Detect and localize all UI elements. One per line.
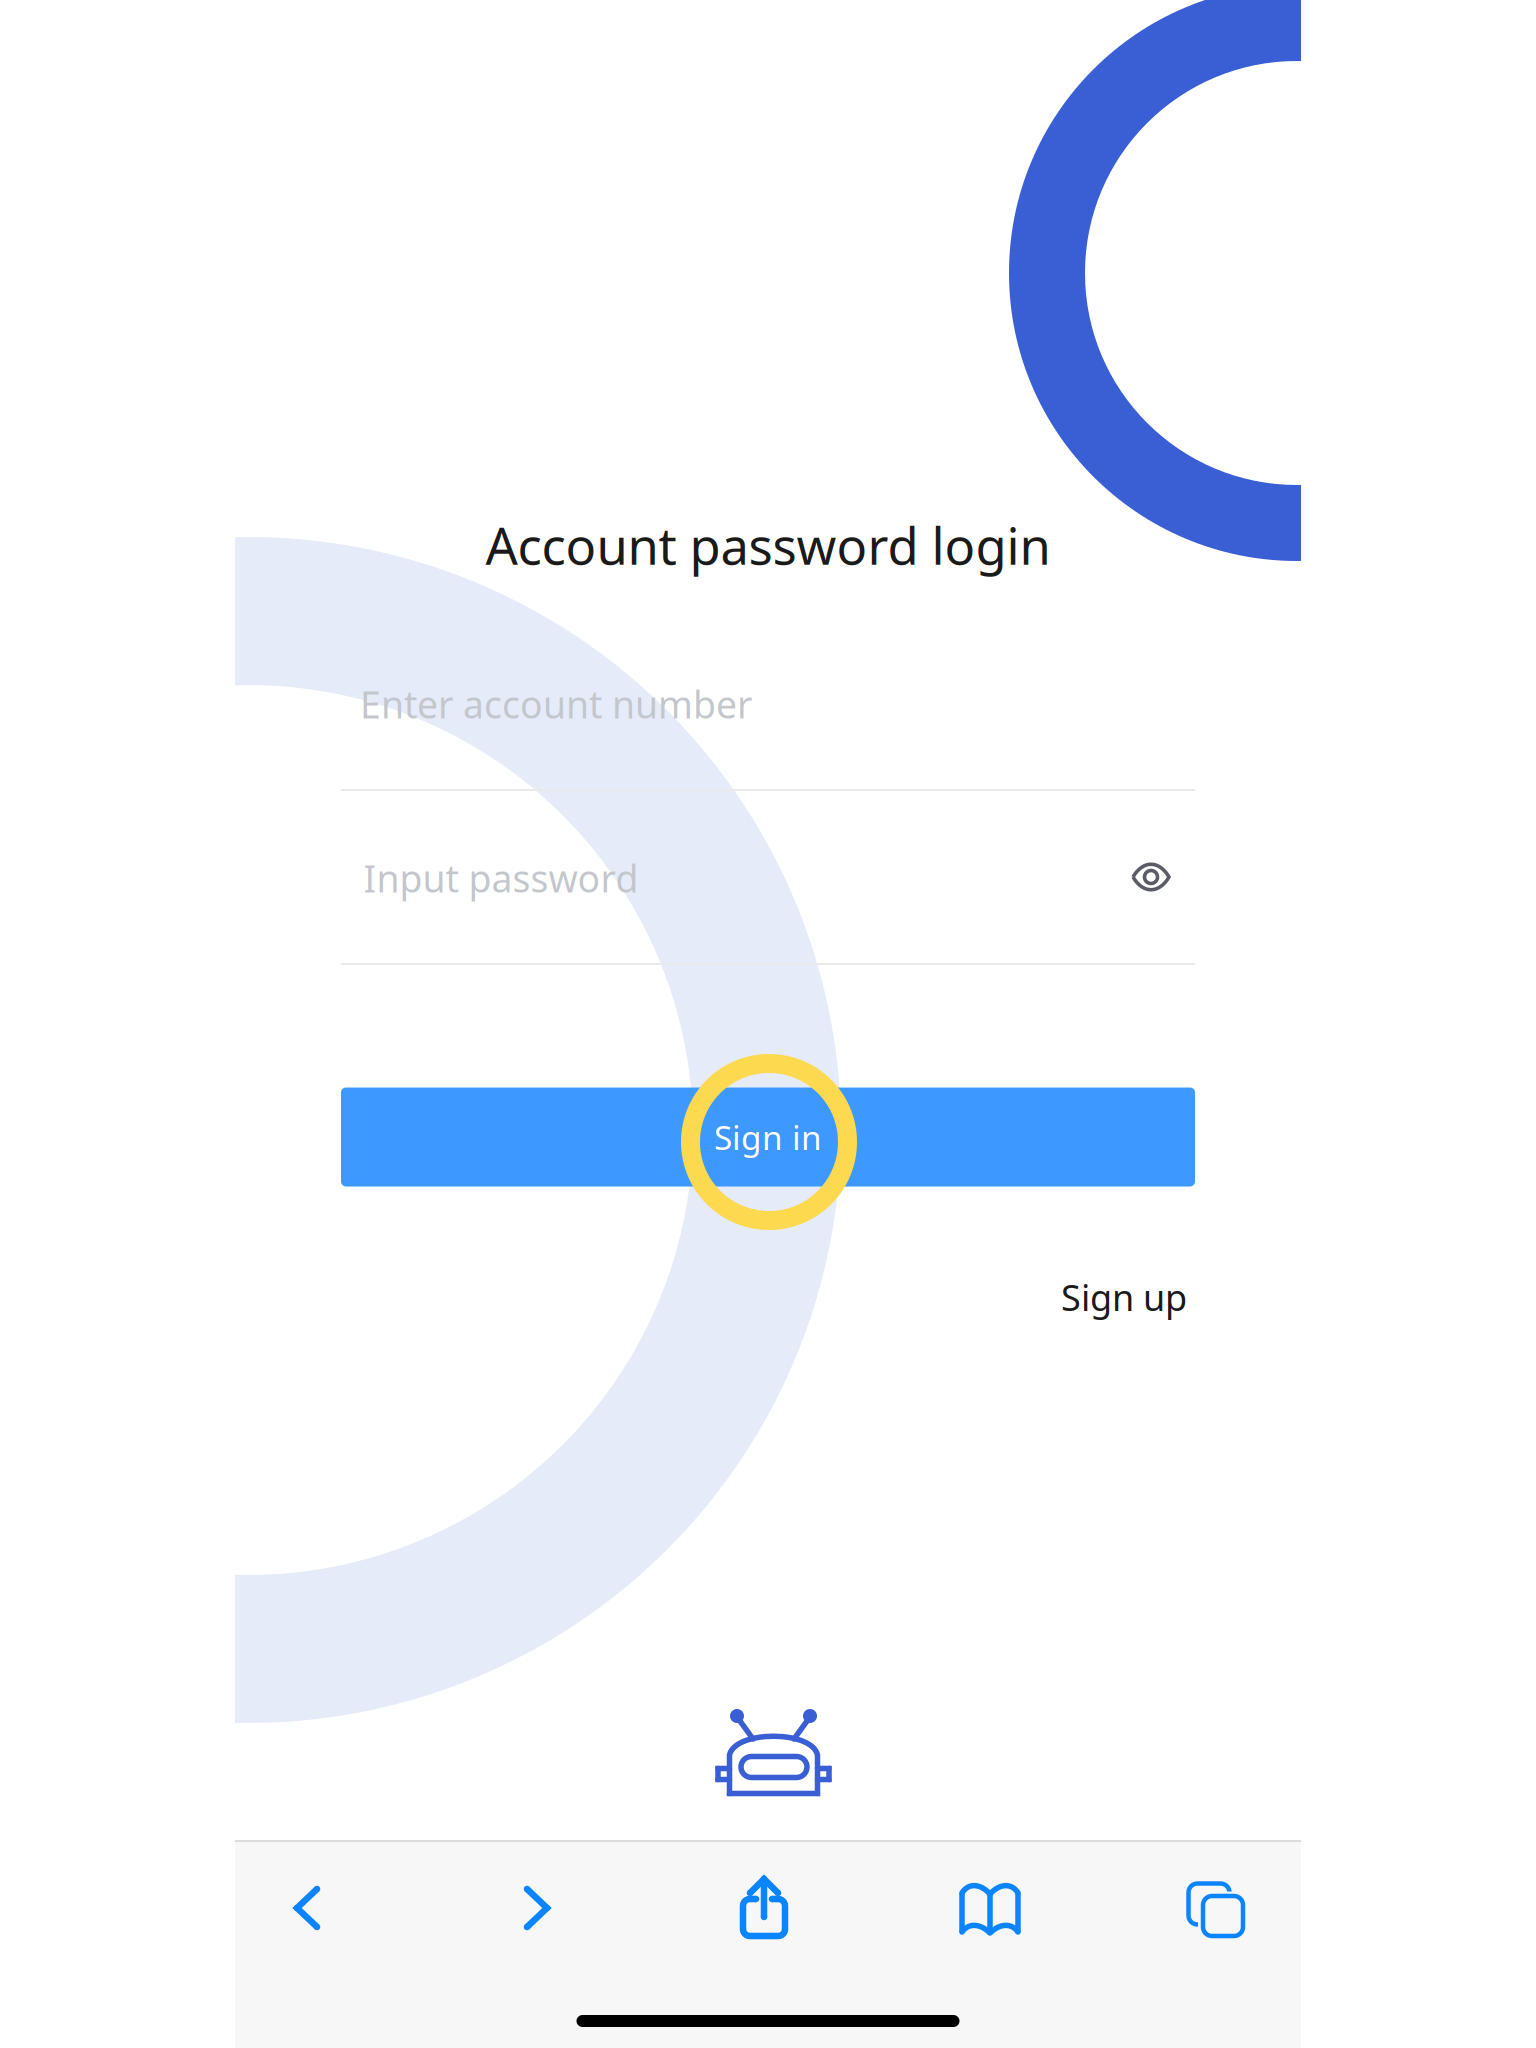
button[interactable]: Forward — [467, 1848, 607, 1968]
button[interactable]: Enter account number — [341, 617, 1195, 791]
staticText: Input password — [363, 853, 638, 903]
button[interactable]: Back — [237, 1848, 377, 1968]
button[interactable]: Sign in — [341, 1087, 1195, 1186]
button[interactable]: Input password — [341, 791, 1195, 965]
staticText: Account password login — [485, 511, 1050, 579]
button[interactable]: Show password — [1121, 855, 1181, 899]
staticText: Sign up — [1061, 1273, 1187, 1321]
button[interactable]: Bookmarks — [920, 1849, 1060, 1969]
button[interactable]: Sign up — [1061, 1273, 1187, 1321]
staticText: Sign in — [714, 1115, 822, 1159]
button[interactable]: Share — [694, 1845, 834, 1965]
staticText: Enter account number — [360, 679, 752, 729]
button[interactable]: Tabs — [1146, 1850, 1286, 1970]
